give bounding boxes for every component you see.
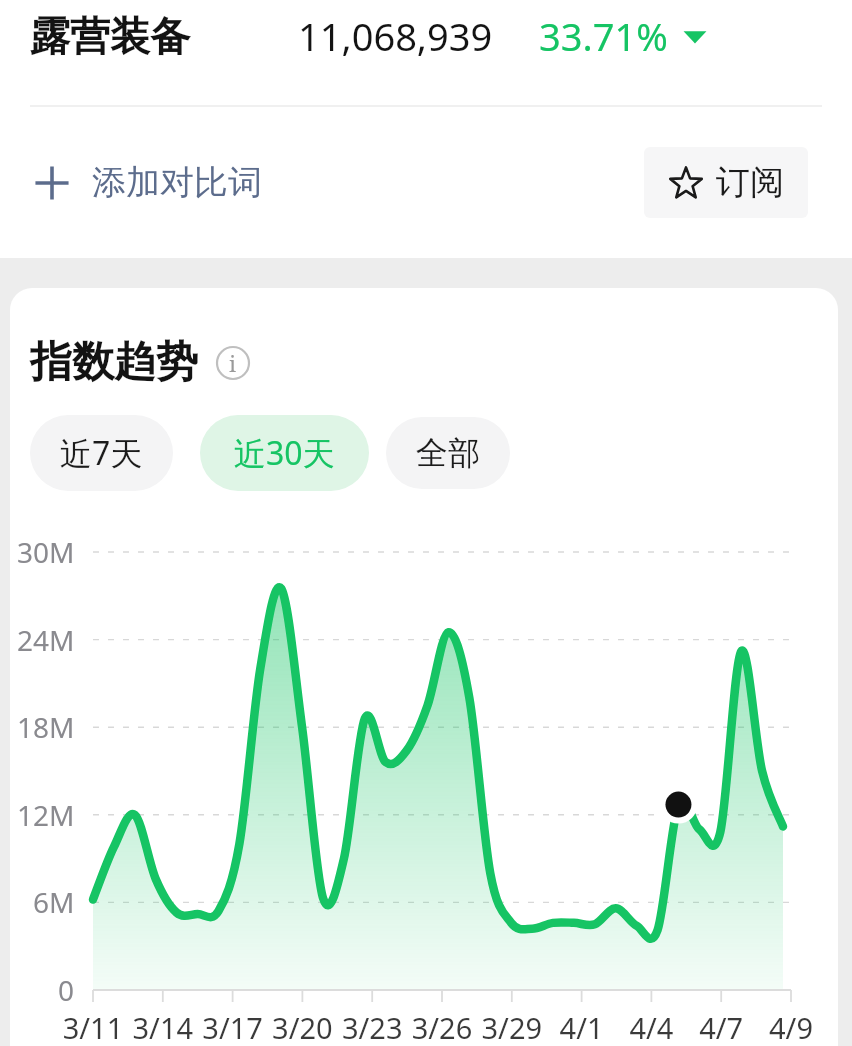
button[interactable]: 近30天	[200, 415, 369, 491]
staticText: 露营装备	[30, 11, 190, 61]
staticText: 添加对比词	[92, 161, 262, 204]
button[interactable]: 近7天	[30, 415, 173, 491]
button[interactable]: 订阅	[644, 147, 808, 218]
staticText: 33.71%	[539, 10, 668, 62]
staticText: 近7天	[60, 431, 143, 475]
button[interactable]: 指数趋势	[30, 336, 250, 389]
staticText: 订阅	[716, 161, 784, 204]
staticText: 11,068,939	[298, 10, 493, 62]
other: Info	[216, 346, 250, 380]
button[interactable]: 全部	[386, 417, 510, 489]
staticText: 全部	[416, 433, 480, 473]
staticText: i	[229, 348, 237, 378]
staticText: 近30天	[234, 431, 335, 475]
staticText: 指数趋势	[30, 336, 198, 389]
button[interactable]: 添加对比词	[30, 153, 266, 212]
